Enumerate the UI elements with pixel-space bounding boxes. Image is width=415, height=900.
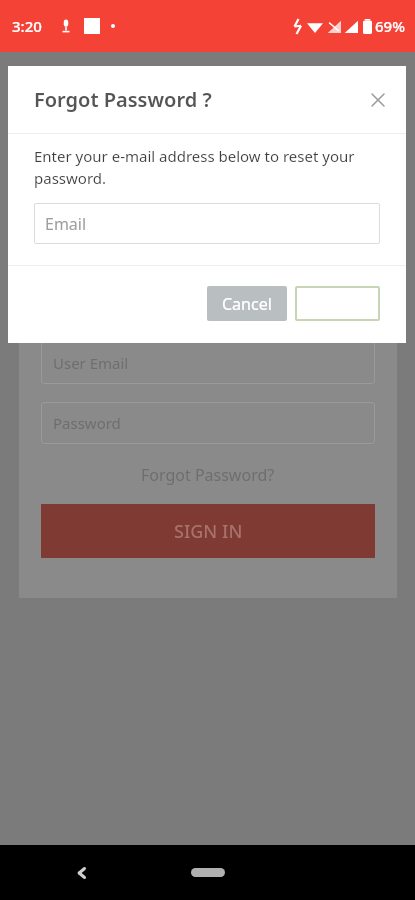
button[interactable]: Password (41, 402, 375, 444)
staticText: Enter your e-mail address below to reset… (34, 146, 380, 189)
button[interactable]: Submit (295, 286, 380, 321)
staticText: Forgot Password ? (34, 86, 212, 113)
staticText: 69% (375, 16, 405, 36)
staticText: Email (45, 213, 87, 235)
button[interactable]: Close (363, 85, 393, 115)
button[interactable]: Home (191, 868, 225, 877)
staticText: 3:20 (12, 16, 42, 36)
button[interactable]: Email (34, 203, 380, 244)
staticText: Forgot Password? (141, 464, 275, 486)
staticText: Password (53, 413, 121, 433)
button[interactable]: Forgot Password? (41, 464, 375, 486)
button[interactable]: SIGN IN (41, 504, 375, 558)
button[interactable]: Back (62, 853, 102, 893)
staticText: Cancel (222, 293, 272, 315)
staticText: User Email (53, 353, 129, 373)
staticText: SIGN IN (174, 519, 243, 544)
button[interactable]: User Email (41, 342, 375, 384)
button[interactable]: Cancel (207, 286, 287, 321)
